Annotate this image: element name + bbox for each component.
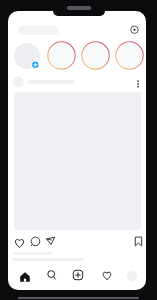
button[interactable]: [14, 267, 36, 287]
button[interactable]: [13, 236, 26, 249]
button[interactable]: [47, 41, 76, 70]
button[interactable]: [67, 265, 89, 285]
button[interactable]: [133, 78, 143, 90]
button[interactable]: [81, 41, 110, 70]
button[interactable]: [41, 265, 63, 285]
button[interactable]: [44, 234, 57, 247]
button[interactable]: [128, 23, 141, 36]
button[interactable]: [12, 73, 142, 91]
button[interactable]: [13, 42, 41, 70]
button[interactable]: [115, 41, 144, 70]
button[interactable]: [96, 265, 118, 285]
button[interactable]: [121, 266, 143, 286]
button[interactable]: [132, 235, 145, 248]
button[interactable]: [29, 235, 42, 248]
